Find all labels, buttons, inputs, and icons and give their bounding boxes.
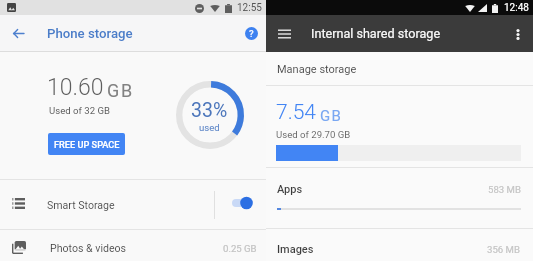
staticText: Used of 32 GB	[49, 105, 110, 116]
staticText: 12:55	[237, 2, 262, 14]
button[interactable]: Images	[266, 229, 533, 261]
button[interactable]: Help	[241, 23, 261, 43]
staticText: 0.25 GB	[223, 243, 257, 254]
staticText: Manage storage	[277, 63, 357, 76]
staticText: GB	[320, 107, 343, 125]
staticText: Phone storage	[47, 26, 133, 41]
staticText: 7.54	[276, 100, 316, 125]
staticText: Apps	[277, 183, 303, 196]
button[interactable]: Navigate up	[7, 22, 29, 44]
staticText: GB	[107, 80, 135, 101]
button[interactable]: Apps	[266, 168, 533, 228]
button[interactable]: More options	[508, 24, 528, 44]
button[interactable]: Photos & videos	[0, 230, 266, 261]
staticText: FREE UP SPACE	[54, 139, 120, 150]
staticText: 583 MB	[488, 184, 521, 195]
staticText: Photos & videos	[50, 242, 127, 254]
staticText: 10.60	[47, 74, 104, 101]
staticText: ?	[249, 28, 254, 39]
staticText: Internal shared storage	[311, 26, 441, 41]
button[interactable]: FREE UP SPACE	[48, 133, 125, 155]
button[interactable]: Smart Storage	[0, 180, 266, 229]
staticText: 356 MB	[487, 244, 520, 255]
button[interactable]: Manage storage	[266, 52, 533, 85]
staticText: Smart Storage	[47, 199, 115, 211]
staticText: Used of 29.70 GB	[276, 129, 351, 140]
staticText: used	[199, 122, 220, 133]
staticText: 12:48	[504, 2, 529, 14]
staticText: Images	[277, 243, 314, 256]
button[interactable]: Smart Storage toggle	[232, 196, 253, 210]
staticText: 33%	[191, 99, 228, 122]
button[interactable]: Open navigation drawer	[273, 23, 295, 45]
